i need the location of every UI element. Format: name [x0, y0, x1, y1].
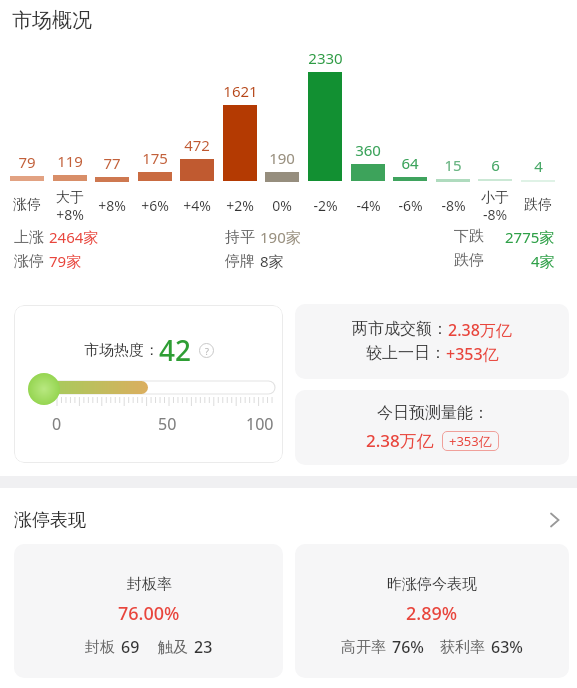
staticText: 获利率: [440, 638, 485, 657]
staticText: 76%: [392, 636, 424, 658]
staticText: 涨停表现: [14, 509, 86, 532]
staticText: 15: [444, 155, 462, 175]
staticText: 0: [52, 413, 62, 435]
button[interactable]: 封板率: [14, 544, 283, 678]
staticText: 今日预测量能：: [377, 403, 489, 423]
staticText: 2330: [308, 48, 343, 68]
staticText: 23: [194, 636, 213, 658]
staticText: 4家: [531, 251, 555, 271]
staticText: 下跌: [454, 227, 484, 246]
staticText: 175: [142, 148, 168, 168]
staticText: -8%: [441, 196, 466, 215]
staticText: 190家: [260, 227, 301, 247]
staticText: 2.38万亿: [448, 319, 512, 341]
staticText: 0%: [272, 196, 292, 215]
staticText: 2.89%: [406, 601, 458, 626]
staticText: 6: [491, 155, 500, 175]
staticText: 77: [103, 153, 121, 173]
staticText: 100: [246, 413, 274, 435]
staticText: 封板: [85, 638, 115, 657]
staticText: 跌停: [454, 251, 484, 270]
staticText: 小于 -8%: [481, 189, 509, 224]
staticText: 持平: [225, 228, 255, 247]
staticText: 69: [121, 636, 140, 658]
button[interactable]: 今日预测量能：: [295, 390, 569, 465]
staticText: 两市成交额：: [352, 319, 448, 339]
staticText: 触及: [158, 638, 188, 657]
staticText: 2775家: [505, 227, 555, 247]
staticText: +8%: [98, 196, 126, 215]
staticText: +353亿: [446, 343, 499, 365]
staticText: 封板率: [127, 575, 172, 594]
staticText: 涨停: [14, 252, 44, 271]
staticText: 50: [158, 413, 177, 435]
staticText: 停牌: [225, 252, 255, 271]
staticText: 昨涨停今表现: [387, 575, 477, 594]
staticText: 472: [184, 135, 210, 155]
staticText: 1621: [223, 81, 258, 101]
button[interactable]: 两市成交额：: [295, 304, 569, 379]
staticText: 76.00%: [118, 601, 180, 626]
staticText: 79: [18, 152, 36, 172]
staticText: 大于 +8%: [56, 189, 84, 224]
staticText: 119: [57, 151, 83, 171]
staticText: -2%: [313, 196, 338, 215]
staticText: ?: [205, 345, 209, 357]
staticText: +4%: [183, 196, 211, 215]
staticText: 190: [269, 148, 295, 168]
button[interactable]: 市场热度：: [14, 305, 283, 463]
button[interactable]: 昨涨停今表现: [295, 544, 569, 678]
staticText: +2%: [226, 196, 254, 215]
staticText: 上涨: [14, 228, 44, 247]
staticText: 2464家: [49, 227, 99, 247]
staticText: 8家: [260, 251, 284, 271]
staticText: -4%: [356, 196, 381, 215]
staticText: 市场热度：: [84, 341, 159, 360]
staticText: +6%: [141, 196, 169, 215]
staticText: 42: [159, 331, 192, 369]
staticText: 63%: [491, 636, 523, 658]
staticText: 跌停: [524, 196, 552, 214]
staticText: 2.38万亿: [366, 429, 434, 452]
staticText: 64: [401, 153, 419, 173]
staticText: -6%: [398, 196, 423, 215]
staticText: 较上一日：: [366, 343, 446, 363]
staticText: 79家: [49, 251, 82, 271]
staticText: 高开率: [341, 638, 386, 657]
staticText: 市场概况: [12, 8, 92, 33]
staticText: 360: [355, 140, 381, 160]
staticText: +353亿: [449, 432, 492, 450]
staticText: 4: [534, 156, 543, 176]
staticText: 涨停: [13, 196, 41, 214]
button[interactable]: 涨停表现: [0, 505, 577, 535]
